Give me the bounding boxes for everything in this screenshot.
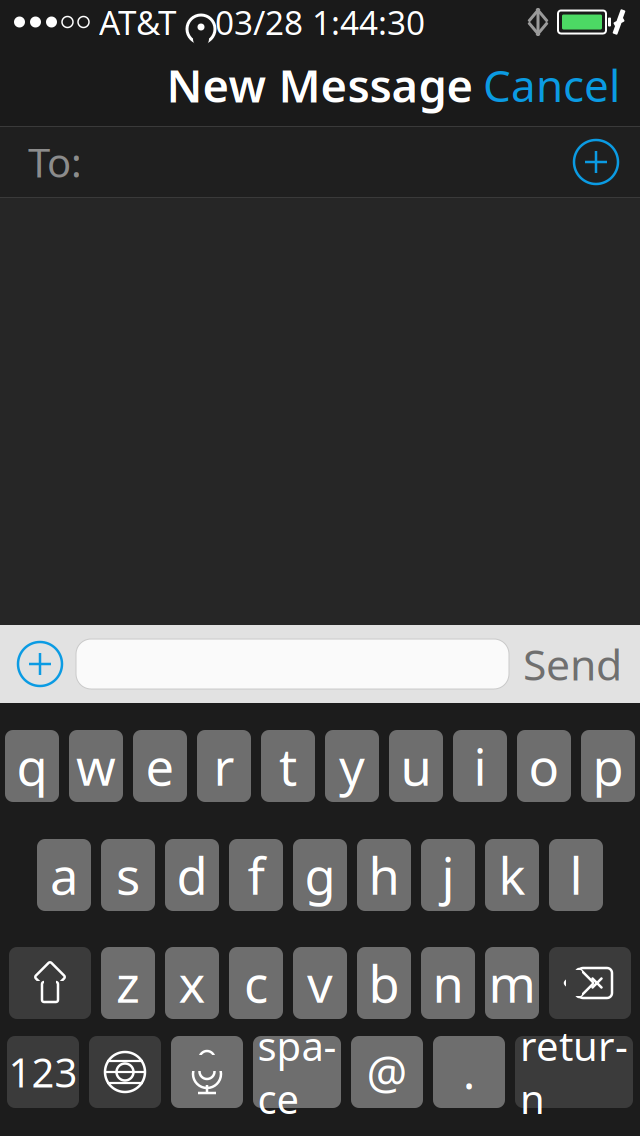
button[interactable]: a <box>37 839 91 911</box>
button[interactable]: w <box>69 730 123 802</box>
staticText: 123 <box>8 1045 77 1098</box>
staticText: n <box>432 949 463 1017</box>
button[interactable]: . <box>433 1036 505 1108</box>
button[interactable]: o <box>517 730 571 802</box>
button[interactable]: Shift <box>9 947 91 1019</box>
button[interactable]: c <box>229 947 283 1019</box>
button[interactable]: m <box>485 947 539 1019</box>
staticText: c <box>244 949 268 1017</box>
staticText: 03/28 1:44:30 <box>215 0 425 44</box>
button[interactable]: i <box>453 730 507 802</box>
staticText: g <box>304 841 335 909</box>
button[interactable]: d <box>165 839 219 911</box>
staticText: l <box>569 841 582 909</box>
staticText: a <box>50 841 78 909</box>
staticText: p <box>592 732 623 800</box>
button[interactable]: Cancel <box>467 44 636 126</box>
staticText: d <box>176 841 207 909</box>
staticText: f <box>247 841 264 909</box>
staticText: s <box>116 841 140 909</box>
button[interactable]: Dictate <box>171 1036 243 1108</box>
button[interactable]: Add attachment <box>6 634 74 694</box>
staticText: k <box>498 841 525 909</box>
staticText: e <box>145 732 174 800</box>
button[interactable]: @ <box>351 1036 423 1108</box>
staticText: v <box>307 949 333 1017</box>
button[interactable]: Send <box>509 626 636 702</box>
staticText: z <box>116 949 140 1017</box>
button[interactable]: Delete <box>549 947 631 1019</box>
button[interactable]: f <box>229 839 283 911</box>
button[interactable]: Next keyboard <box>89 1036 161 1108</box>
button[interactable]: z <box>101 947 155 1019</box>
staticText: To: <box>28 135 82 188</box>
button[interactable]: return <box>515 1036 633 1108</box>
button[interactable]: j <box>421 839 475 911</box>
button[interactable]: x <box>165 947 219 1019</box>
button[interactable]: e <box>133 730 187 802</box>
staticText: t <box>279 732 297 800</box>
staticText: y <box>339 732 365 800</box>
button[interactable]: g <box>293 839 347 911</box>
button[interactable]: n <box>421 947 475 1019</box>
staticText: u <box>400 732 431 800</box>
staticText: h <box>368 841 399 909</box>
staticText: w <box>76 732 116 800</box>
staticText: return <box>520 1019 628 1125</box>
button[interactable]: t <box>261 730 315 802</box>
button[interactable]: r <box>197 730 251 802</box>
staticText: r <box>213 732 234 800</box>
button[interactable]: v <box>293 947 347 1019</box>
staticText: @ <box>366 1042 407 1102</box>
button[interactable]: space <box>253 1036 341 1108</box>
button[interactable]: h <box>357 839 411 911</box>
staticText: . <box>463 1042 475 1102</box>
button[interactable]: y <box>325 730 379 802</box>
staticText: b <box>368 949 399 1017</box>
button[interactable]: Add contact <box>564 130 628 194</box>
staticText: o <box>528 732 559 800</box>
staticText: x <box>178 949 205 1017</box>
staticText: q <box>16 732 47 800</box>
button[interactable]: k <box>485 839 539 911</box>
button[interactable]: s <box>101 839 155 911</box>
staticText: space <box>257 1019 336 1125</box>
staticText: AT&T <box>99 0 177 44</box>
staticText: j <box>441 841 454 909</box>
staticText: Send <box>523 636 622 692</box>
button[interactable]: p <box>581 730 635 802</box>
button[interactable]: l <box>549 839 603 911</box>
button[interactable]: b <box>357 947 411 1019</box>
staticText: Cancel <box>483 56 620 114</box>
staticText: m <box>488 949 535 1017</box>
button[interactable]: u <box>389 730 443 802</box>
staticText: i <box>473 732 486 800</box>
button[interactable]: q <box>5 730 59 802</box>
staticText: New Message <box>166 55 473 115</box>
button[interactable]: 123 <box>7 1036 79 1108</box>
